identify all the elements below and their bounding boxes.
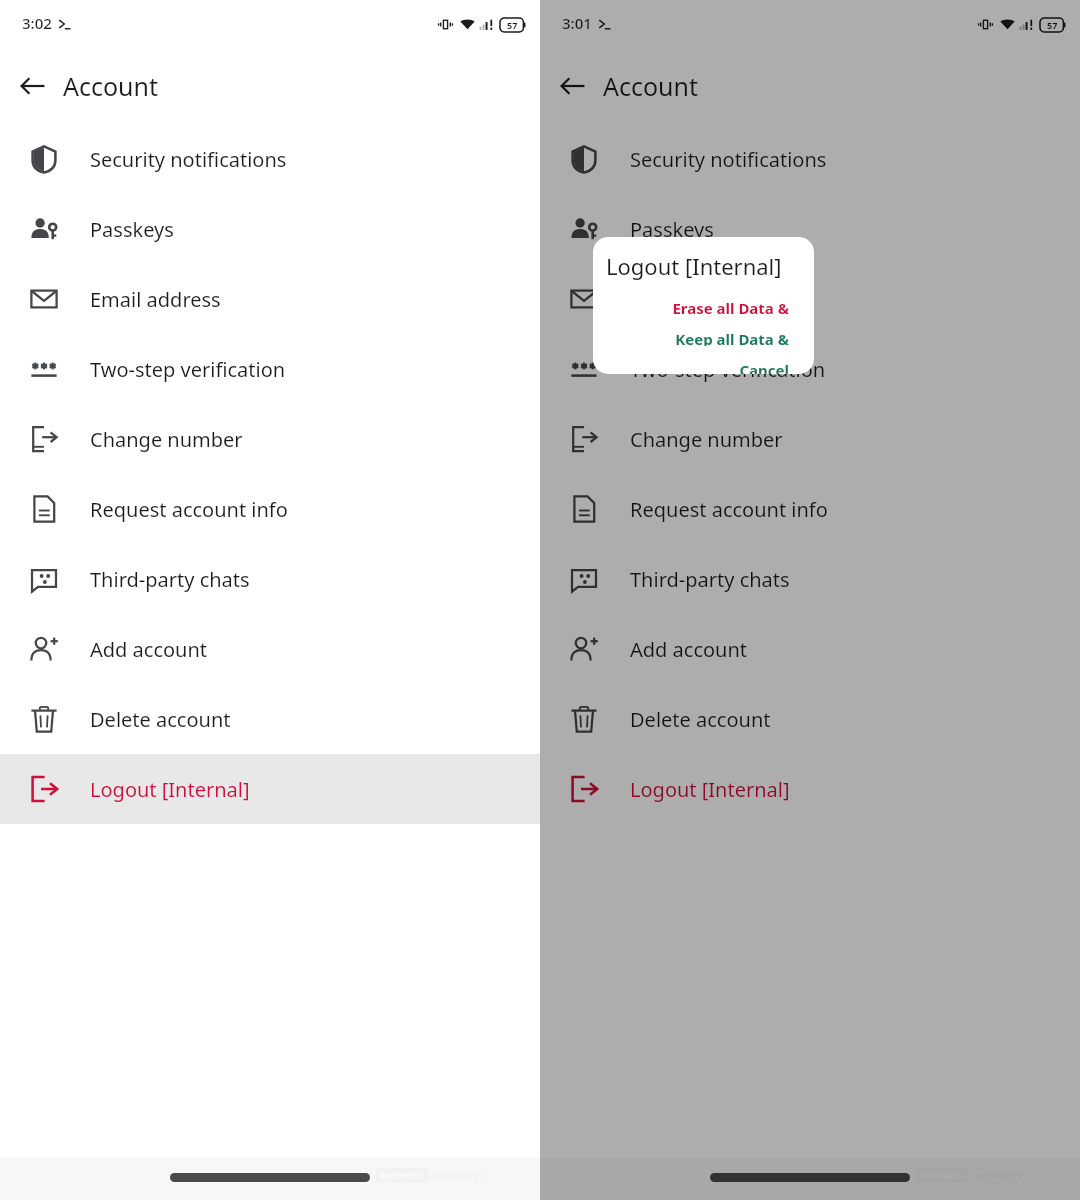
button[interactable]: Email address <box>0 264 540 334</box>
button[interactable]: Change number <box>540 404 1080 474</box>
staticText: Email address <box>90 286 221 313</box>
staticText: Two-step verification <box>630 356 826 383</box>
staticText: Add account <box>630 636 748 663</box>
button[interactable]: Third-party chats <box>0 544 540 614</box>
staticText: Logout [Internal] <box>606 251 782 281</box>
staticText: Logout [Internal] <box>630 776 790 803</box>
staticText: Cancel <box>739 360 789 374</box>
staticText: Passkeys <box>630 216 714 243</box>
staticText: Change number <box>90 426 243 453</box>
button[interactable]: Third-party chats <box>540 544 1080 614</box>
button[interactable]: Two-step verification <box>540 334 1080 404</box>
staticText: 57 <box>1047 19 1058 31</box>
button[interactable]: Request account info <box>540 474 1080 544</box>
staticText: ANDROID <box>380 1169 424 1181</box>
button[interactable]: Back <box>10 63 56 109</box>
staticText: Add account <box>90 636 208 663</box>
staticText: Erase all Data & preferences <box>593 298 789 315</box>
staticText: Email address <box>630 286 761 313</box>
button[interactable]: Cancel <box>593 360 814 374</box>
button[interactable]: Back <box>550 63 596 109</box>
staticText: Change number <box>630 426 783 453</box>
button[interactable]: Passkeys <box>540 194 1080 264</box>
staticText: Delete account <box>630 706 771 733</box>
staticText: Delete account <box>90 706 231 733</box>
staticText: Security notifications <box>90 146 287 173</box>
button[interactable]: Security notifications <box>540 124 1080 194</box>
staticText: 3:01 <box>562 13 592 33</box>
button[interactable]: Email address <box>540 264 1080 334</box>
button[interactable]: Delete account <box>540 684 1080 754</box>
button[interactable]: Logout [Internal] <box>0 754 540 824</box>
button[interactable]: Two-step verification <box>0 334 540 404</box>
staticText: Account <box>603 69 699 103</box>
button[interactable]: Add account <box>0 614 540 684</box>
button[interactable]: Logout [Internal] <box>540 754 1080 824</box>
button[interactable]: Erase all Data & preferences <box>593 298 814 315</box>
staticText: Third-party chats <box>630 566 790 593</box>
staticText: Request account info <box>630 496 828 523</box>
staticText: Keep all Data & preferences <box>593 329 789 346</box>
staticText: Two-step verification <box>90 356 286 383</box>
staticText: 57 <box>507 19 518 31</box>
button[interactable]: Change number <box>0 404 540 474</box>
staticText: Security notifications <box>630 146 827 173</box>
button[interactable]: Delete account <box>0 684 540 754</box>
button[interactable]: Keep all Data & preferences <box>593 329 814 346</box>
staticText: Account <box>63 69 159 103</box>
button[interactable]: Security notifications <box>0 124 540 194</box>
button[interactable]: Add account <box>540 614 1080 684</box>
staticText: Request account info <box>90 496 288 523</box>
staticText: Passkeys <box>90 216 174 243</box>
button[interactable]: Passkeys <box>0 194 540 264</box>
staticText: Third-party chats <box>90 566 250 593</box>
staticText: 3:02 <box>22 13 52 33</box>
button[interactable]: Request account info <box>0 474 540 544</box>
staticText: Logout [Internal] <box>90 776 250 803</box>
